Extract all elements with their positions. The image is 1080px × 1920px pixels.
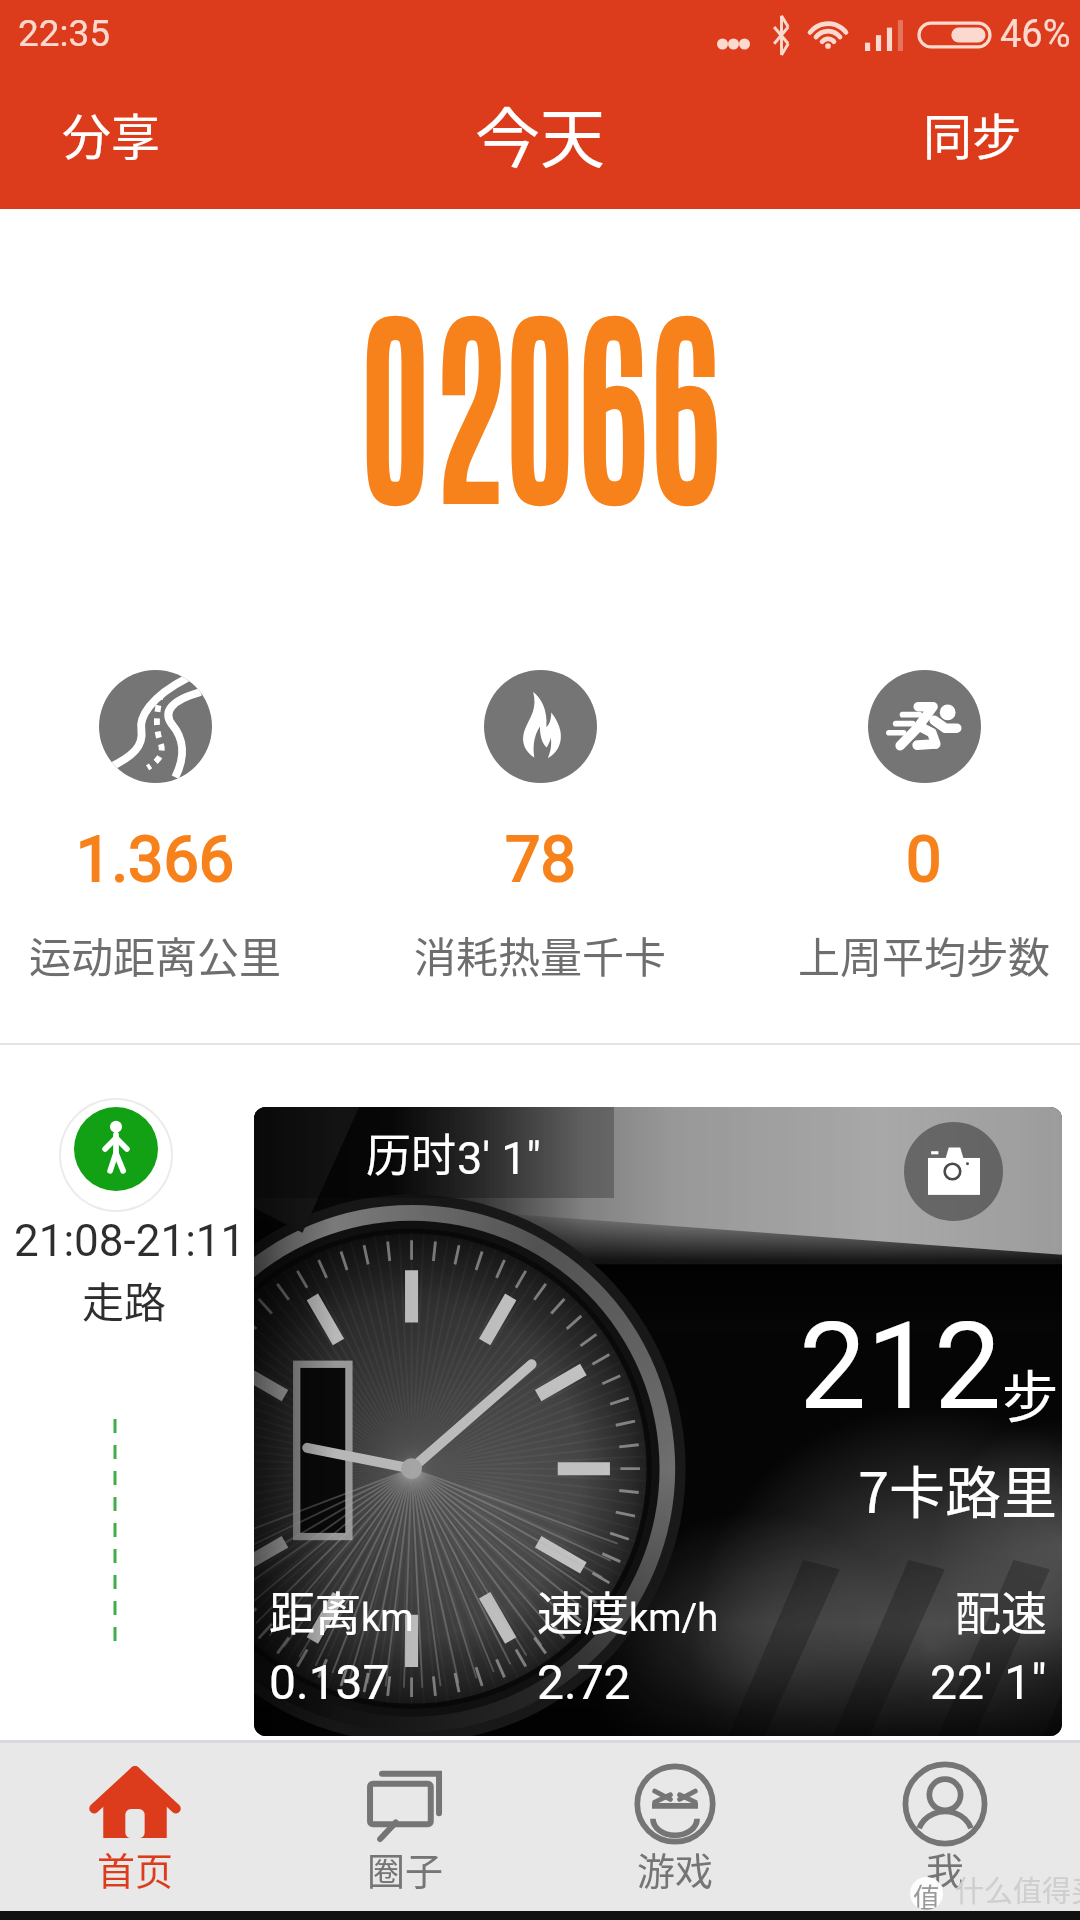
staticText: 0 bbox=[906, 823, 942, 897]
staticText: 21:08-21:11 bbox=[14, 1215, 246, 1267]
staticText: 3' 1" bbox=[457, 1132, 542, 1185]
button[interactable]: 圈子 bbox=[270, 1743, 540, 1911]
button[interactable]: 同步 bbox=[863, 72, 1080, 209]
staticText: 22' 1" bbox=[930, 1654, 1047, 1710]
staticText: 今天 bbox=[475, 87, 606, 181]
staticText: 分享 bbox=[62, 98, 161, 169]
staticText: 2.72 bbox=[537, 1654, 631, 1710]
staticText: 值 bbox=[913, 1877, 940, 1910]
button[interactable]: Camera bbox=[904, 1122, 1003, 1221]
staticText: 距离 bbox=[269, 1577, 361, 1644]
staticText: 游戏 bbox=[637, 1841, 714, 1896]
staticText: 上周平均步数 bbox=[798, 924, 1051, 985]
staticText: 消耗热量千卡 bbox=[414, 924, 667, 985]
button[interactable]: 78 bbox=[380, 646, 700, 985]
staticText: 1.366 bbox=[76, 823, 235, 897]
button[interactable]: 我 bbox=[810, 1743, 1080, 1911]
staticText: 212 bbox=[799, 1297, 1002, 1438]
staticText: 22:35 bbox=[18, 12, 111, 55]
button[interactable]: 首页 bbox=[0, 1743, 270, 1911]
staticText: km bbox=[361, 1596, 414, 1641]
staticText: 首页 bbox=[97, 1841, 174, 1896]
staticText: 什么值得买 bbox=[955, 1868, 1080, 1910]
staticText: 配速 bbox=[955, 1577, 1047, 1644]
staticText: 7卡路里 bbox=[858, 1448, 1058, 1529]
staticText: km/h bbox=[629, 1596, 719, 1641]
button[interactable]: Walking activity bbox=[74, 1107, 158, 1191]
staticText: 走路 bbox=[82, 1269, 167, 1330]
staticText: 0.137 bbox=[269, 1654, 390, 1710]
staticText: 历时 bbox=[366, 1120, 457, 1185]
button[interactable]: 0 bbox=[764, 646, 1080, 985]
staticText: 同步 bbox=[923, 98, 1022, 169]
staticText: 运动距离公里 bbox=[29, 924, 282, 985]
button[interactable]: 分享 bbox=[0, 72, 221, 209]
staticText: 圈子 bbox=[367, 1841, 444, 1896]
button[interactable]: 1.366 bbox=[0, 646, 315, 985]
staticText: 速度 bbox=[537, 1577, 629, 1644]
staticText: 步 bbox=[1002, 1352, 1058, 1433]
staticText: 我 bbox=[926, 1841, 965, 1896]
staticText: 02066 bbox=[359, 260, 721, 530]
staticText: 46% bbox=[1000, 12, 1071, 57]
button[interactable]: 游戏 bbox=[540, 1743, 810, 1911]
button[interactable]: 历时 bbox=[254, 1107, 1062, 1736]
staticText: 78 bbox=[505, 823, 576, 897]
